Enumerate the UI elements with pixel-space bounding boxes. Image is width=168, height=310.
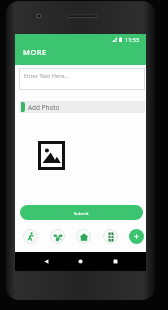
button[interactable]: Enter Text Here... xyxy=(19,68,145,90)
button[interactable]: Home xyxy=(77,258,84,265)
button[interactable]: Add xyxy=(129,229,144,244)
button[interactable]: Nature xyxy=(50,229,65,244)
button[interactable]: Add Photo xyxy=(19,101,145,113)
button[interactable]: Activity xyxy=(23,229,38,244)
button[interactable]: Home xyxy=(76,229,91,244)
staticText: Submit xyxy=(74,210,89,216)
button[interactable]: Recents xyxy=(112,258,119,265)
staticText: Enter Text Here... xyxy=(24,72,69,80)
staticText: Add Photo xyxy=(28,103,60,112)
button[interactable]: List xyxy=(103,229,118,244)
button[interactable]: Back xyxy=(43,258,50,265)
staticText: MORE xyxy=(23,47,47,57)
button[interactable]: Submit xyxy=(20,205,143,220)
staticText: 11:53 xyxy=(125,36,140,43)
